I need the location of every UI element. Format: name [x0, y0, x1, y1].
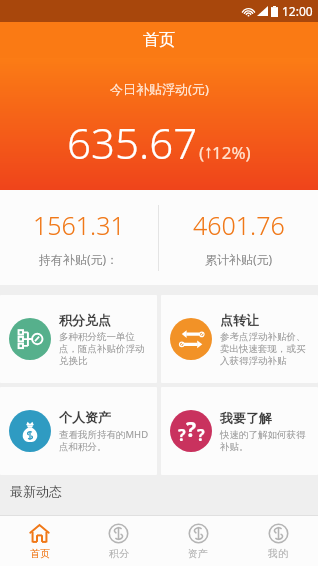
staticText: 首页 [143, 30, 175, 50]
button[interactable]: ? [161, 387, 318, 475]
staticText: ? [178, 424, 186, 446]
staticText: 参考点浮动补贴价、卖出快速套现，或买入获得浮动补贴 [220, 331, 312, 367]
staticText: 1561.31 [33, 208, 125, 242]
staticText: 我的 [268, 547, 288, 560]
button[interactable]: 积分 [79, 516, 158, 566]
button[interactable]: 积分兑点 [0, 295, 157, 383]
staticText: 查看我所持有的MHD点和积分。 [59, 428, 151, 453]
staticText: 资产 [188, 547, 208, 560]
staticText: 快速的了解如何获得补贴。 [220, 429, 312, 453]
button[interactable]: 4601.76 [159, 190, 318, 285]
staticText: 我要了解 [220, 410, 272, 426]
staticText: 点转让 [220, 312, 259, 328]
staticText: ( [199, 141, 205, 164]
button[interactable]: 个人资产 [0, 387, 157, 475]
staticText: 最新动态 [10, 483, 62, 499]
staticText: 持有补贴(元)： [39, 251, 119, 267]
staticText: 4601.76 [193, 208, 285, 242]
staticText: 积分兑点 [59, 312, 111, 328]
staticText: 12%) [212, 141, 251, 164]
button[interactable]: 点转让 [161, 295, 318, 383]
staticText: 12:00 [282, 3, 313, 19]
staticText: 首页 [30, 547, 50, 560]
staticText: 今日补贴浮动(元) [110, 80, 209, 98]
staticText: 积分 [109, 547, 129, 560]
button[interactable]: 1561.31 [0, 190, 158, 285]
staticText: 个人资产 [59, 409, 111, 425]
button[interactable]: 首页 [0, 516, 79, 566]
staticText: 累计补贴(元) [205, 251, 273, 267]
button[interactable]: 我的 [238, 516, 318, 566]
staticText: 多种积分统一单位点，随点补贴价浮动兑换比 [59, 331, 151, 367]
staticText: ? [197, 424, 205, 446]
staticText: ? [186, 415, 197, 444]
button[interactable]: 资产 [158, 516, 238, 566]
staticText: 635.67 [67, 114, 198, 171]
